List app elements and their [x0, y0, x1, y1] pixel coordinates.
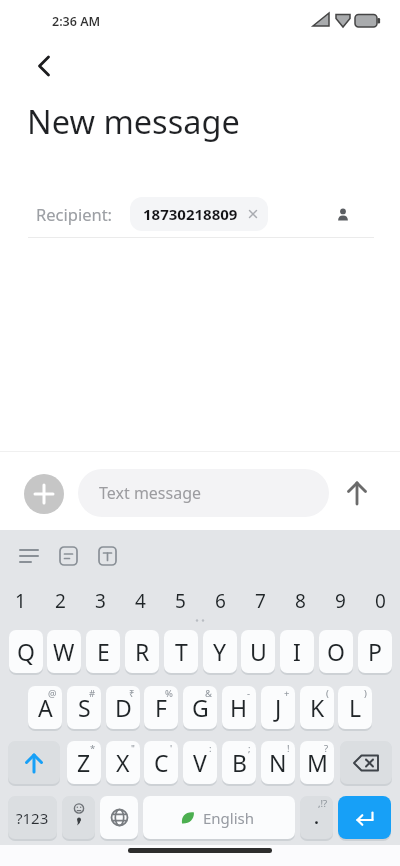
staticText: N: [269, 747, 287, 778]
staticText: M: [307, 747, 328, 778]
staticText: %: [165, 687, 173, 700]
staticText: E: [97, 636, 110, 667]
staticText: 5: [175, 588, 186, 614]
button[interactable]: [341, 477, 373, 509]
staticText: 9: [335, 588, 346, 614]
button[interactable]: E: [86, 630, 120, 673]
button[interactable]: K: [300, 686, 334, 729]
button[interactable]: Text message: [78, 469, 329, 517]
button[interactable]: English: [143, 796, 295, 839]
button[interactable]: F: [144, 686, 178, 729]
button[interactable]: 18730218809: [130, 197, 268, 231]
button[interactable]: X: [106, 741, 140, 784]
staticText: -: [247, 687, 251, 700]
staticText: ;: [248, 742, 251, 755]
button[interactable]: 5: [160, 582, 200, 619]
staticText: New message: [27, 99, 240, 143]
staticText: U: [250, 636, 267, 667]
staticText: J: [275, 692, 282, 723]
staticText: &: [205, 687, 212, 700]
staticText: R: [135, 636, 150, 667]
button[interactable]: 0: [360, 582, 400, 619]
button[interactable]: [51, 544, 85, 568]
button[interactable]: 6: [200, 582, 240, 619]
staticText: :: [209, 742, 212, 755]
button[interactable]: ?123: [8, 796, 57, 839]
staticText: S: [78, 692, 91, 723]
staticText: ): [364, 687, 367, 700]
staticText: W: [53, 636, 75, 667]
button[interactable]: Q: [9, 630, 43, 673]
button[interactable]: V: [183, 741, 217, 784]
staticText: 1: [15, 588, 26, 614]
button[interactable]: [12, 544, 46, 568]
staticText: Text message: [99, 482, 202, 504]
button[interactable]: O: [319, 630, 353, 673]
button[interactable]: S: [67, 686, 101, 729]
staticText: +: [284, 687, 290, 700]
button[interactable]: D: [106, 686, 140, 729]
staticText: G: [192, 692, 209, 723]
button[interactable]: L: [338, 686, 372, 729]
staticText: ': [170, 742, 173, 755]
staticText: T: [175, 636, 188, 667]
button[interactable]: N: [261, 741, 295, 784]
button[interactable]: [8, 741, 60, 784]
staticText: K: [310, 692, 325, 723]
button[interactable]: P: [358, 630, 392, 673]
staticText: .: [314, 805, 319, 830]
staticText: 2: [55, 588, 66, 614]
button[interactable]: [100, 796, 138, 839]
button[interactable]: I: [280, 630, 314, 673]
button[interactable]: R: [125, 630, 159, 673]
staticText: 0: [375, 588, 386, 614]
staticText: 4: [135, 588, 146, 614]
button[interactable]: M: [300, 741, 334, 784]
staticText: ,!?: [318, 797, 328, 810]
button[interactable]: [62, 796, 95, 839]
staticText: English: [203, 808, 255, 828]
button[interactable]: B: [222, 741, 256, 784]
staticText: D: [115, 692, 132, 723]
button[interactable]: 7: [240, 582, 280, 619]
staticText: *: [90, 742, 96, 755]
staticText: (: [326, 687, 329, 700]
button[interactable]: .: [300, 796, 333, 839]
staticText: H: [230, 692, 248, 723]
button[interactable]: 3: [80, 582, 120, 619]
button[interactable]: U: [241, 630, 275, 673]
staticText: !: [287, 742, 290, 755]
button[interactable]: H: [222, 686, 256, 729]
staticText: L: [349, 692, 362, 723]
button[interactable]: 2: [40, 582, 80, 619]
button[interactable]: [90, 544, 124, 568]
button[interactable]: A: [28, 686, 62, 729]
button[interactable]: [28, 50, 62, 82]
staticText: Recipient:: [36, 203, 113, 225]
staticText: 6: [215, 588, 226, 614]
button[interactable]: G: [183, 686, 217, 729]
button[interactable]: Z: [67, 741, 101, 784]
button[interactable]: 4: [120, 582, 160, 619]
button[interactable]: T: [164, 630, 198, 673]
button[interactable]: 8: [280, 582, 320, 619]
button[interactable]: C: [144, 741, 178, 784]
button[interactable]: Y: [203, 630, 237, 673]
button[interactable]: W: [47, 630, 81, 673]
staticText: 3: [95, 588, 106, 614]
button[interactable]: J: [261, 686, 295, 729]
button[interactable]: 1: [0, 582, 40, 619]
staticText: @: [48, 687, 57, 700]
staticText: 7: [255, 588, 266, 614]
staticText: B: [232, 747, 247, 778]
button[interactable]: [340, 741, 392, 784]
staticText: 18730218809: [143, 204, 238, 224]
button[interactable]: 9: [320, 582, 360, 619]
button[interactable]: [338, 796, 391, 839]
staticText: F: [155, 692, 167, 723]
staticText: Y: [213, 636, 227, 667]
button[interactable]: [329, 200, 357, 228]
button[interactable]: [24, 474, 64, 514]
staticText: V: [193, 747, 207, 778]
staticText: ?: [324, 742, 329, 755]
